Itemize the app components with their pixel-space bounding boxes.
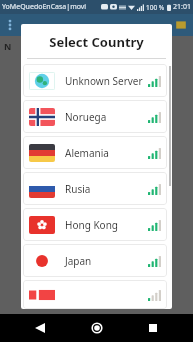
staticText: Noruega [65,110,107,124]
button[interactable]: Recents [136,314,170,342]
staticText: Hong Kong [65,218,118,232]
button[interactable]: Hong Kong [23,208,167,241]
button[interactable] [23,280,167,309]
staticText: 21:01 [173,2,191,12]
staticText: Japan [65,254,92,268]
button[interactable]: Alemania [23,136,167,169]
button[interactable]: Unknown Server [23,64,167,97]
staticText: N [4,40,12,52]
staticText: 100 % [146,3,165,12]
staticText: Select Country [21,33,172,51]
button[interactable]: Japan [23,244,167,277]
button[interactable]: Noruega [23,100,167,133]
button[interactable]: Back [23,314,57,342]
staticText: Rusia [65,182,91,196]
staticText: Alemania [65,146,109,160]
button[interactable]: Home [80,314,114,342]
staticText: Unknown Server [65,74,143,88]
staticText: YoMeQuedoEnCasa|movi [2,2,87,12]
button[interactable]: Rusia [23,172,167,205]
